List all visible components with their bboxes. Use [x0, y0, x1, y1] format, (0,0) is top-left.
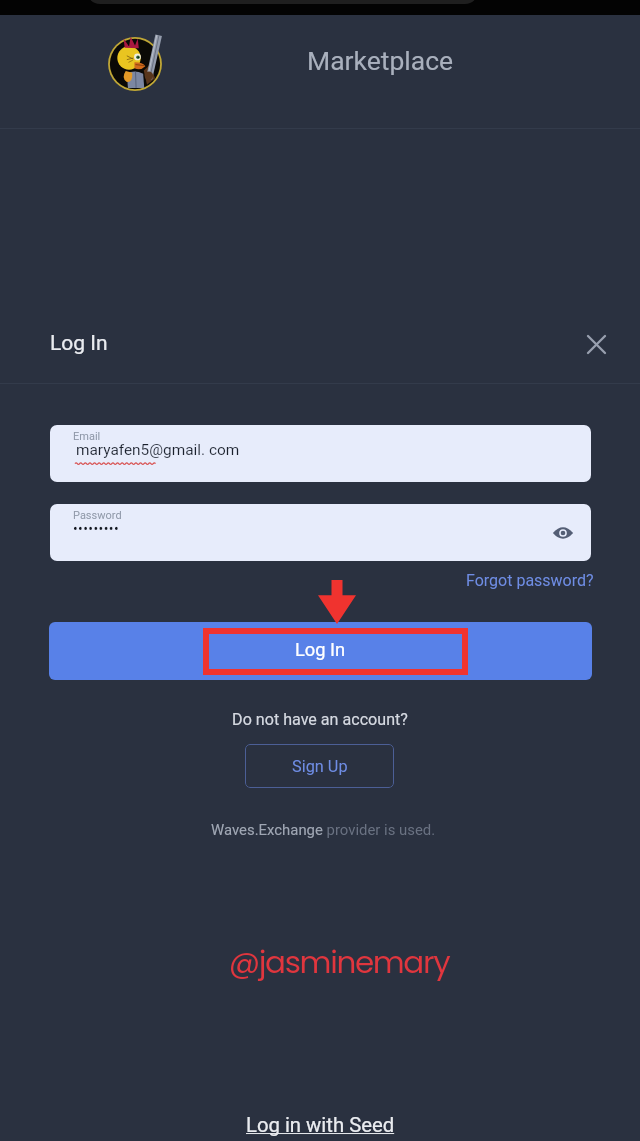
button[interactable]: Email: [50, 425, 591, 482]
staticText: Marketplace: [307, 45, 454, 76]
staticText: Waves.Exchange provider is used.: [211, 821, 436, 838]
staticText: Log In: [50, 331, 108, 356]
staticText: Password: [73, 509, 122, 522]
button[interactable]: Account logo: [101, 30, 169, 98]
staticText: maryafen5@gmail. com: [76, 441, 240, 459]
button[interactable]: Log in with Seed: [238, 1110, 403, 1140]
staticText: Log in with Seed: [246, 1113, 395, 1137]
staticText: @jasminemary: [19, 940, 640, 983]
button[interactable]: Password: [50, 504, 591, 561]
button[interactable]: Log In: [49, 622, 592, 680]
staticText: Email: [73, 430, 101, 443]
button[interactable]: Sign Up: [245, 744, 394, 788]
staticText: •••••••••: [73, 521, 120, 537]
staticText: Log In: [295, 639, 346, 660]
staticText: Do not have an account?: [0, 710, 640, 729]
staticText: Sign Up: [292, 757, 348, 776]
staticText: Forgot password?: [466, 571, 594, 590]
button[interactable]: Forgot password?: [458, 568, 602, 593]
button[interactable]: Show password: [548, 518, 577, 547]
button[interactable]: Close: [581, 329, 611, 359]
